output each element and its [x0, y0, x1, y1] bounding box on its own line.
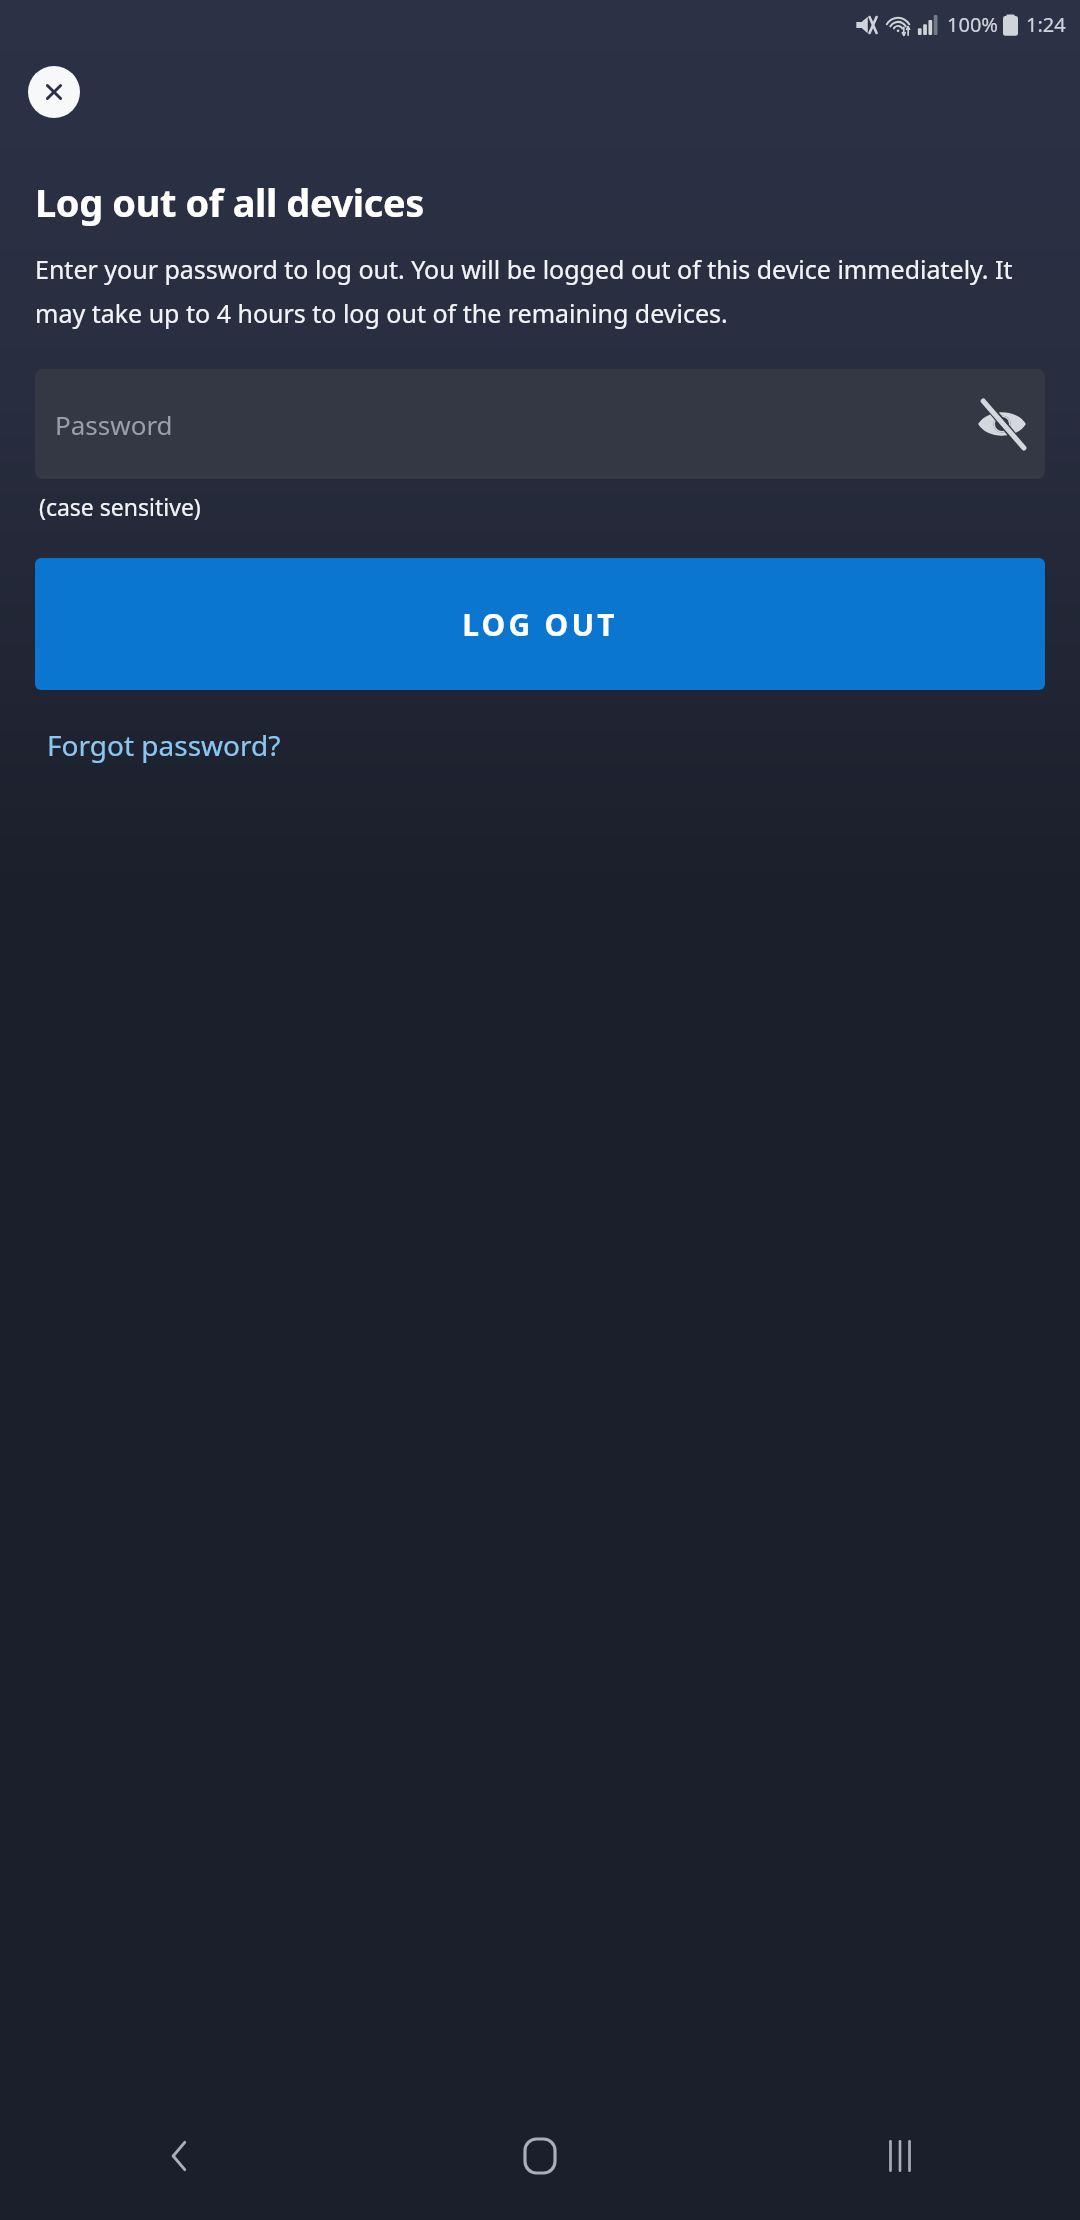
button[interactable]: Back [132, 2108, 228, 2204]
staticText: LOG OUT [462, 604, 618, 645]
button[interactable]: Home [492, 2108, 588, 2204]
staticText: Forgot password? [47, 726, 281, 764]
staticText: 1:24 [1026, 11, 1066, 38]
button[interactable]: Close [28, 66, 80, 118]
button[interactable]: Forgot password? [39, 720, 289, 770]
staticText: Enter your password to log out. You will… [35, 252, 1045, 331]
button[interactable]: Recent apps [852, 2108, 948, 2204]
button[interactable]: Show password [973, 395, 1031, 453]
button[interactable]: Password [35, 369, 1045, 479]
staticText: (case sensitive) [39, 491, 201, 522]
staticText: 100% [947, 11, 998, 38]
staticText: Password [55, 407, 173, 442]
button[interactable]: LOG OUT [35, 558, 1045, 690]
staticText: Log out of all devices [35, 176, 424, 228]
